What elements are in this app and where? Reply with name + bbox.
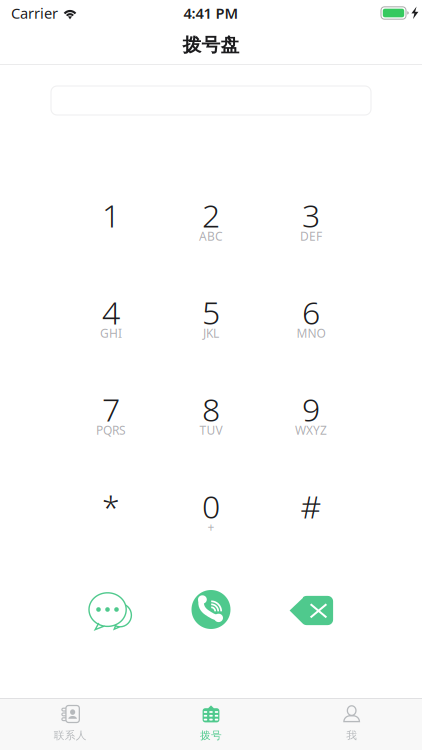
button[interactable]: Call [161, 588, 261, 632]
button[interactable]: 0 [161, 483, 261, 541]
button[interactable]: 拨号 [141, 699, 281, 750]
staticText: 4 [102, 291, 120, 333]
button[interactable]: 我 [281, 699, 422, 750]
staticText: 拨号 [200, 729, 222, 742]
staticText: 0 [202, 485, 220, 527]
button[interactable]: 2 [161, 192, 261, 250]
button[interactable]: 7 [61, 386, 161, 444]
staticText: JKL [203, 325, 219, 341]
button[interactable]: Message [61, 588, 161, 632]
button[interactable]: 6 [261, 289, 361, 347]
button[interactable]: Delete [261, 588, 361, 632]
button[interactable]: 8 [161, 386, 261, 444]
staticText: + [207, 519, 214, 535]
staticText: 8 [202, 388, 220, 430]
button[interactable]: 4 [61, 289, 161, 347]
button[interactable]: 联系人 [0, 699, 141, 750]
staticText: 3 [302, 194, 320, 236]
button[interactable]: 1 [61, 192, 161, 250]
staticText: MNO [296, 325, 325, 341]
staticText: WXYZ [295, 422, 327, 438]
staticText: 4:41 PM [183, 3, 238, 23]
staticText: 7 [102, 388, 120, 430]
staticText: # [300, 485, 321, 527]
button[interactable]: * [61, 483, 161, 541]
staticText: DEF [300, 228, 322, 244]
button[interactable]: # [261, 483, 361, 541]
button[interactable]: 9 [261, 386, 361, 444]
staticText: GHI [100, 325, 122, 341]
staticText: * [102, 485, 120, 527]
staticText: 拨号盘 [182, 33, 239, 56]
staticText: Carrier [11, 3, 58, 23]
staticText: TUV [199, 422, 222, 438]
staticText: 5 [202, 291, 220, 333]
staticText: 6 [302, 291, 320, 333]
staticText: 联系人 [54, 729, 87, 742]
staticText: 9 [302, 388, 320, 430]
button[interactable]: 3 [261, 192, 361, 250]
staticText: ABC [199, 228, 223, 244]
staticText: PQRS [96, 422, 126, 438]
staticText: 我 [346, 729, 357, 742]
staticText: 2 [202, 194, 220, 236]
button[interactable]: 5 [161, 289, 261, 347]
staticText: 1 [102, 194, 120, 236]
